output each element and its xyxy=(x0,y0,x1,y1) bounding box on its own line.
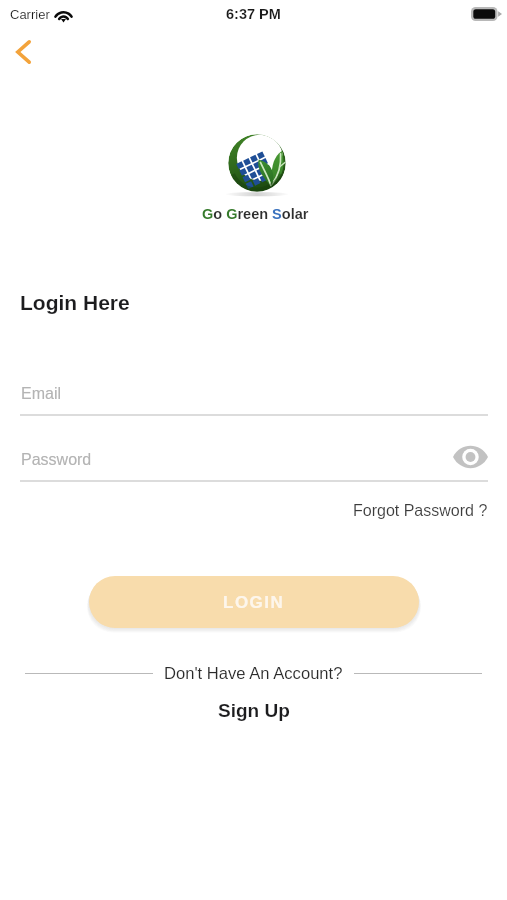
button[interactable]: Back xyxy=(1,30,45,74)
button[interactable]: Show password xyxy=(451,440,489,474)
staticText: Don't Have An Account? xyxy=(164,664,343,683)
staticText: Email xyxy=(21,385,62,403)
button[interactable]: LOGIN xyxy=(89,576,419,628)
staticText: Login Here xyxy=(20,291,130,314)
staticText: LOGIN xyxy=(223,593,285,612)
staticText: Password xyxy=(21,451,92,469)
staticText: 6:37 PM xyxy=(226,6,281,22)
button[interactable]: Forgot Password ? xyxy=(353,499,488,523)
staticText: Go Green Solar xyxy=(202,206,309,222)
staticText: Carrier xyxy=(10,7,50,22)
button[interactable]: Sign Up xyxy=(208,698,300,723)
